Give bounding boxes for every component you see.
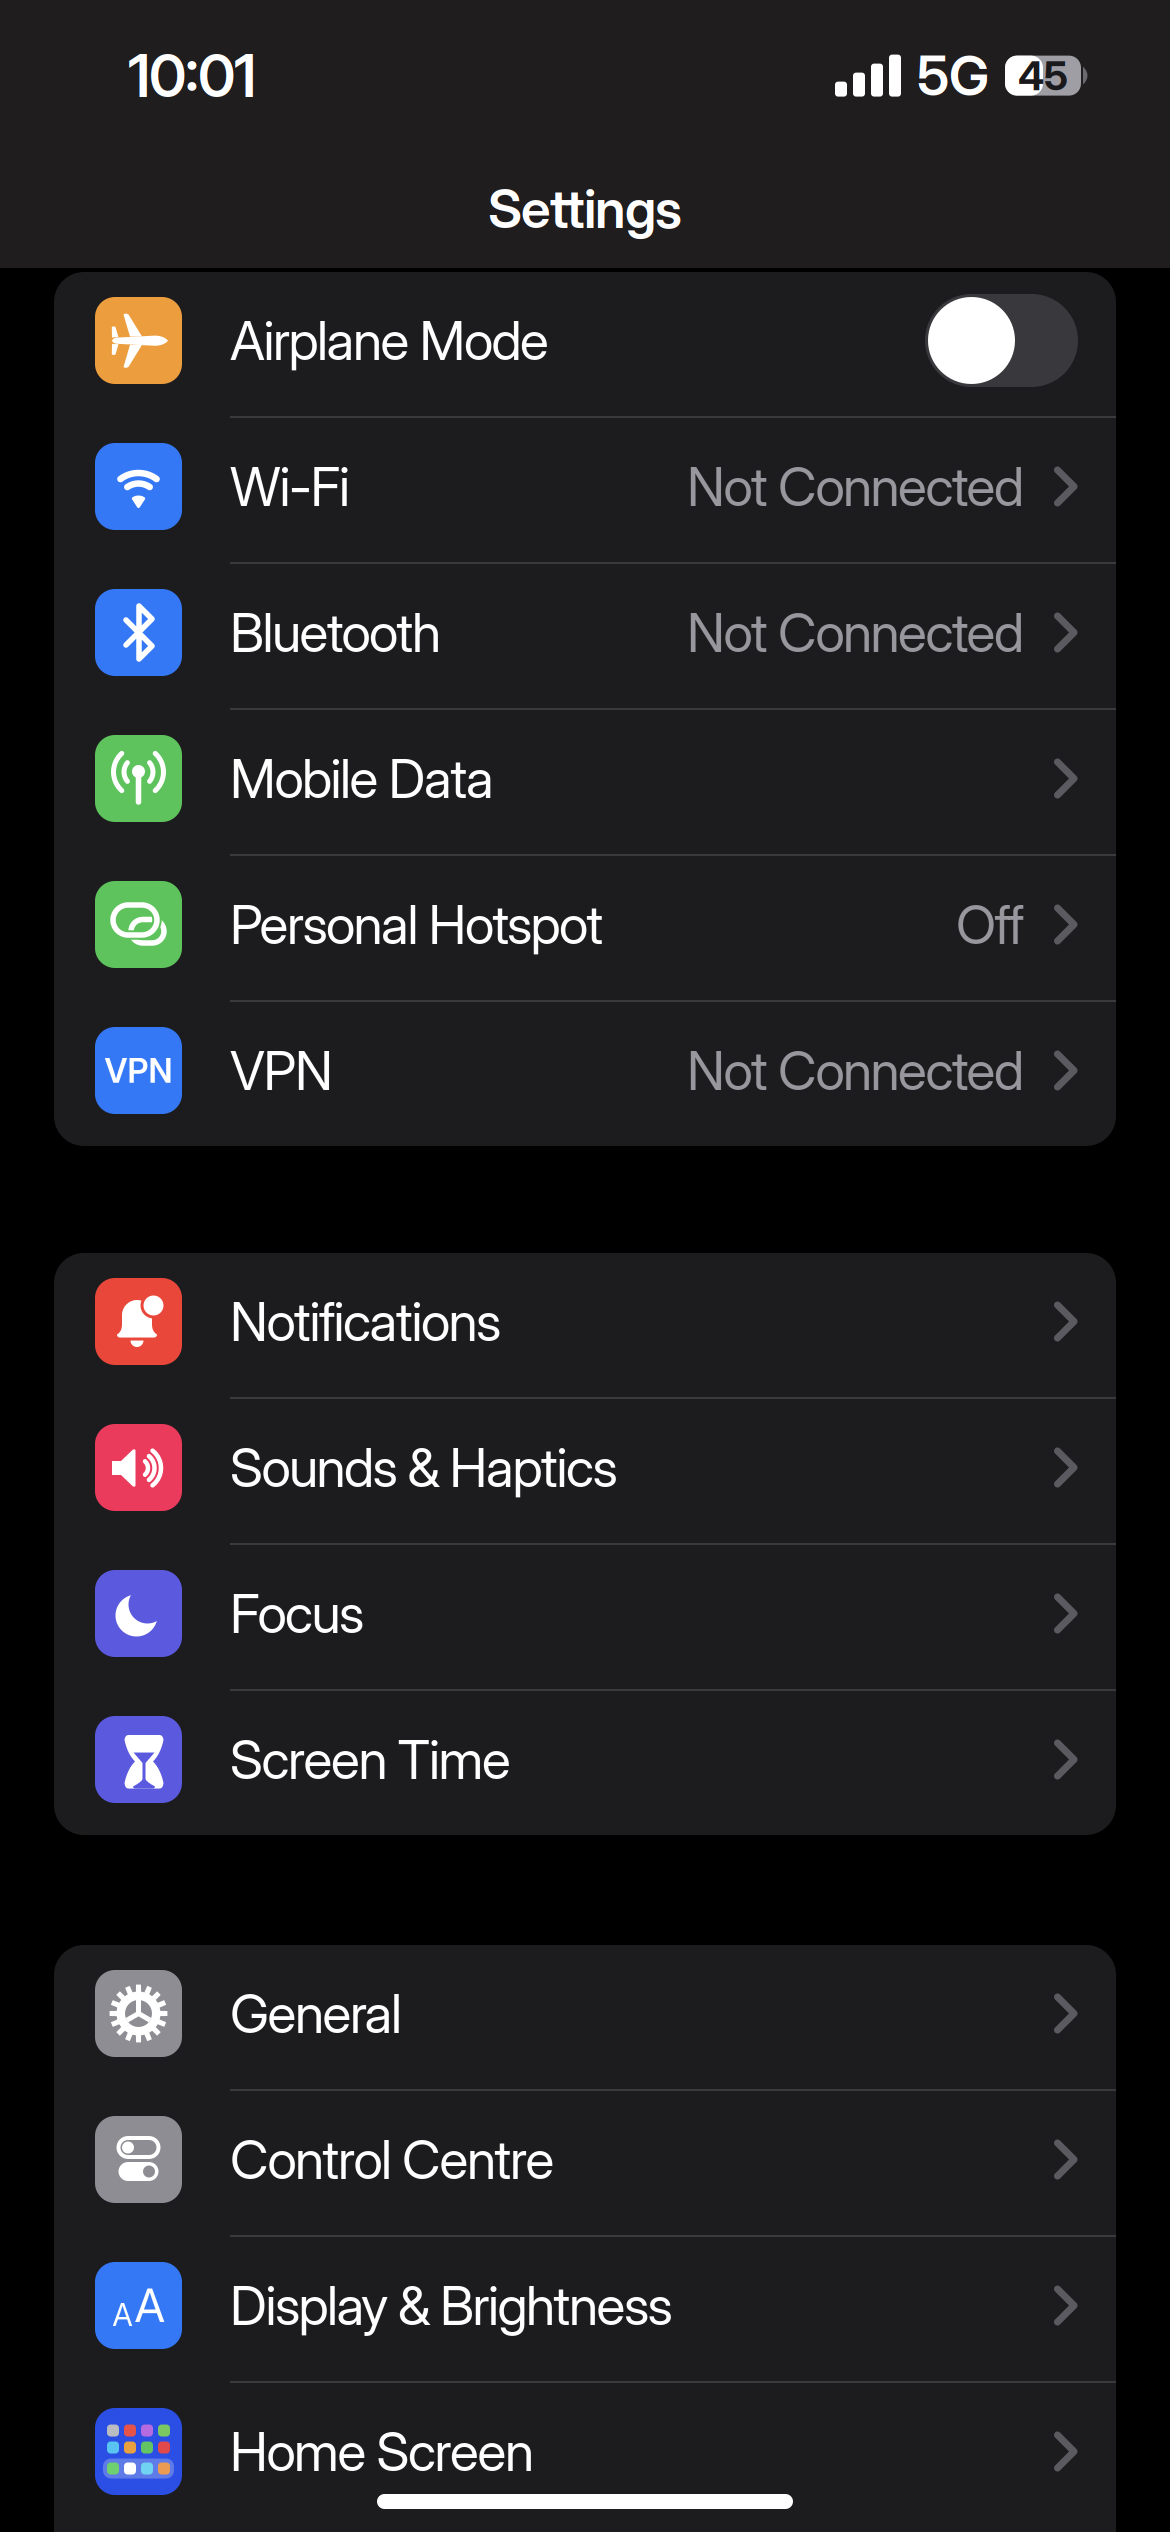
button[interactable]: Home Screen <box>54 2383 1116 2527</box>
button[interactable]: Control Centre <box>54 2091 1116 2235</box>
staticText: Home Screen <box>230 2420 534 2483</box>
staticText: 45 <box>1018 52 1068 99</box>
staticText: Not Connected <box>687 1039 1024 1102</box>
staticText: General <box>230 1982 402 2045</box>
button[interactable]: Personal Hotspot <box>54 856 1116 1000</box>
button[interactable]: Sounds & Haptics <box>54 1399 1116 1543</box>
staticText: Not Connected <box>687 455 1024 518</box>
button[interactable]: Screen Time <box>54 1691 1116 1835</box>
staticText: Wi-Fi <box>230 455 350 518</box>
button[interactable]: Wi-Fi <box>54 418 1116 562</box>
staticText: 10:01 <box>128 41 256 110</box>
button[interactable]: Notifications <box>54 1253 1116 1397</box>
staticText: Screen Time <box>230 1728 511 1791</box>
button[interactable]: Bluetooth <box>54 564 1116 708</box>
staticText: Focus <box>230 1582 364 1645</box>
staticText: Notifications <box>230 1290 501 1353</box>
button[interactable]: General <box>54 1945 1116 2089</box>
staticText: A <box>112 2297 132 2333</box>
staticText: 5G <box>917 43 989 108</box>
button[interactable]: Focus <box>54 1545 1116 1689</box>
staticText: Mobile Data <box>230 747 494 810</box>
staticText: Not Connected <box>687 601 1024 664</box>
button[interactable]: A <box>54 2237 1116 2381</box>
staticText: Off <box>956 893 1024 956</box>
staticText: Bluetooth <box>230 601 441 664</box>
staticText: A <box>134 2278 164 2333</box>
staticText: Personal Hotspot <box>230 893 603 956</box>
staticText: Settings <box>488 177 682 240</box>
staticText: Sounds & Haptics <box>230 1436 617 1499</box>
staticText: VPN <box>104 1051 172 1090</box>
button[interactable]: Mobile Data <box>54 710 1116 854</box>
staticText: Display & Brightness <box>230 2274 672 2337</box>
button[interactable]: Airplane Mode <box>925 294 1078 387</box>
staticText: Control Centre <box>230 2128 554 2191</box>
staticText: VPN <box>230 1039 333 1102</box>
staticText: Airplane Mode <box>230 309 549 372</box>
button[interactable]: VPN <box>54 1002 1116 1146</box>
